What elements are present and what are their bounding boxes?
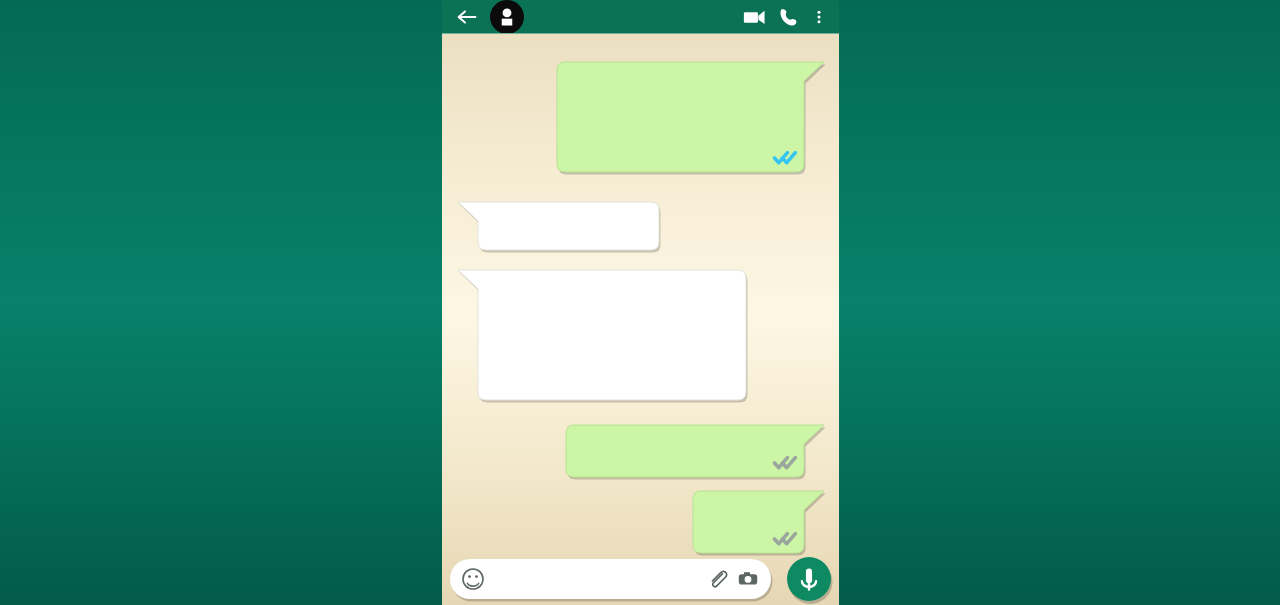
button[interactable]: Attach xyxy=(703,564,733,594)
button[interactable]: Video call xyxy=(737,0,771,34)
button[interactable]: Emoji xyxy=(450,559,771,599)
button[interactable]: Camera xyxy=(733,564,763,594)
button[interactable]: Back xyxy=(452,2,482,32)
button[interactable]: Emoji xyxy=(458,564,488,594)
button[interactable]: Contact profile xyxy=(490,0,526,34)
button[interactable]: Voice call xyxy=(771,0,805,34)
button[interactable]: More options xyxy=(805,3,833,31)
button[interactable]: Record voice message xyxy=(787,557,831,601)
